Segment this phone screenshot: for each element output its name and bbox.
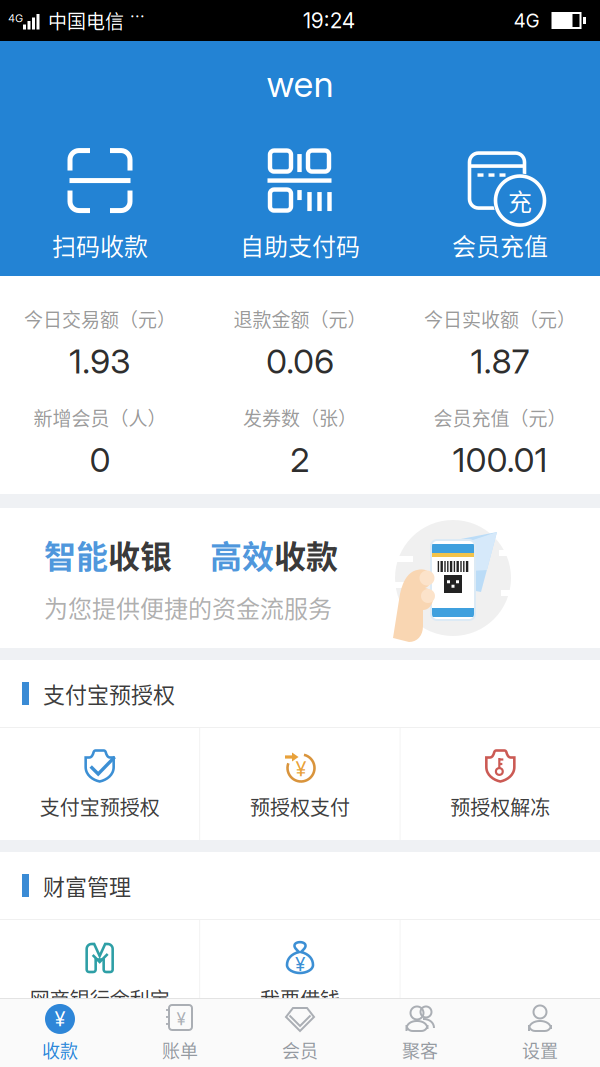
staticText: 1.93 <box>69 340 131 382</box>
staticText: 会员 <box>282 1037 318 1063</box>
staticText: 新增会员（人） <box>33 404 166 431</box>
staticText: 设置 <box>522 1037 558 1063</box>
staticText: 充 <box>508 183 532 218</box>
staticText: ¥ <box>176 1009 185 1029</box>
staticText: 收银 <box>108 531 172 578</box>
staticText: 0 <box>89 439 110 480</box>
button[interactable]: 会员 <box>240 999 360 1067</box>
staticText: 退款金额（元） <box>233 305 366 332</box>
staticText: 智能 <box>44 531 108 578</box>
staticText: 收款 <box>42 1037 78 1063</box>
staticText: 发券数（张） <box>243 404 357 431</box>
button[interactable]: 设置 <box>480 999 600 1067</box>
staticText: 中国电信 <box>48 7 124 34</box>
button[interactable]: 预授权解冻 <box>401 728 600 840</box>
staticText: 0.06 <box>266 340 334 382</box>
staticText: 自助支付码 <box>240 228 360 262</box>
staticText: 扫码收款 <box>52 228 148 262</box>
staticText: 4G <box>8 11 23 25</box>
staticText: 支付宝预授权 <box>40 792 160 821</box>
button[interactable]: 网商银行余利宝 <box>0 920 199 1032</box>
staticText: 聚客 <box>402 1037 438 1063</box>
staticText: 预授权支付 <box>250 792 350 821</box>
button[interactable]: ¥ <box>200 920 400 1032</box>
staticText: 2 <box>290 439 310 480</box>
staticText: 我要借钱 <box>260 984 340 1013</box>
button[interactable]: 充 <box>400 148 600 262</box>
button[interactable]: 自助支付码 <box>200 148 400 262</box>
button[interactable]: 支付宝预授权 <box>0 728 199 840</box>
staticText: 为您提供便捷的资金流服务 <box>44 590 332 625</box>
staticText: ¥ <box>295 952 305 975</box>
staticText: 100.01 <box>452 439 547 480</box>
staticText: 会员充值（元） <box>433 404 566 431</box>
staticText: 财富管理 <box>43 870 131 901</box>
staticText: 支付宝预授权 <box>43 678 175 709</box>
staticText: ¥ <box>54 1007 65 1031</box>
button[interactable]: ¥ <box>0 999 120 1067</box>
button[interactable]: 聚客 <box>360 999 480 1067</box>
staticText: 今日交易额（元） <box>24 305 176 332</box>
staticText: 预授权解冻 <box>450 792 550 821</box>
button[interactable]: ¥ <box>200 728 400 840</box>
staticText: 收款 <box>274 531 338 578</box>
staticText: wen <box>266 62 333 106</box>
staticText: 账单 <box>162 1037 198 1063</box>
button[interactable]: 扫码收款 <box>0 148 200 262</box>
staticText: ¥ <box>295 757 306 781</box>
staticText: 网商银行余利宝 <box>30 984 170 1013</box>
staticText: 19:24 <box>303 8 356 33</box>
staticText: 高效 <box>210 531 274 578</box>
staticText: 今日实收额（元） <box>424 305 576 332</box>
staticText: ··· <box>130 7 145 26</box>
button[interactable]: ¥ <box>120 999 240 1067</box>
staticText: 1.87 <box>470 340 529 382</box>
staticText: 会员充值 <box>452 228 548 262</box>
staticText: 4G <box>513 9 539 32</box>
